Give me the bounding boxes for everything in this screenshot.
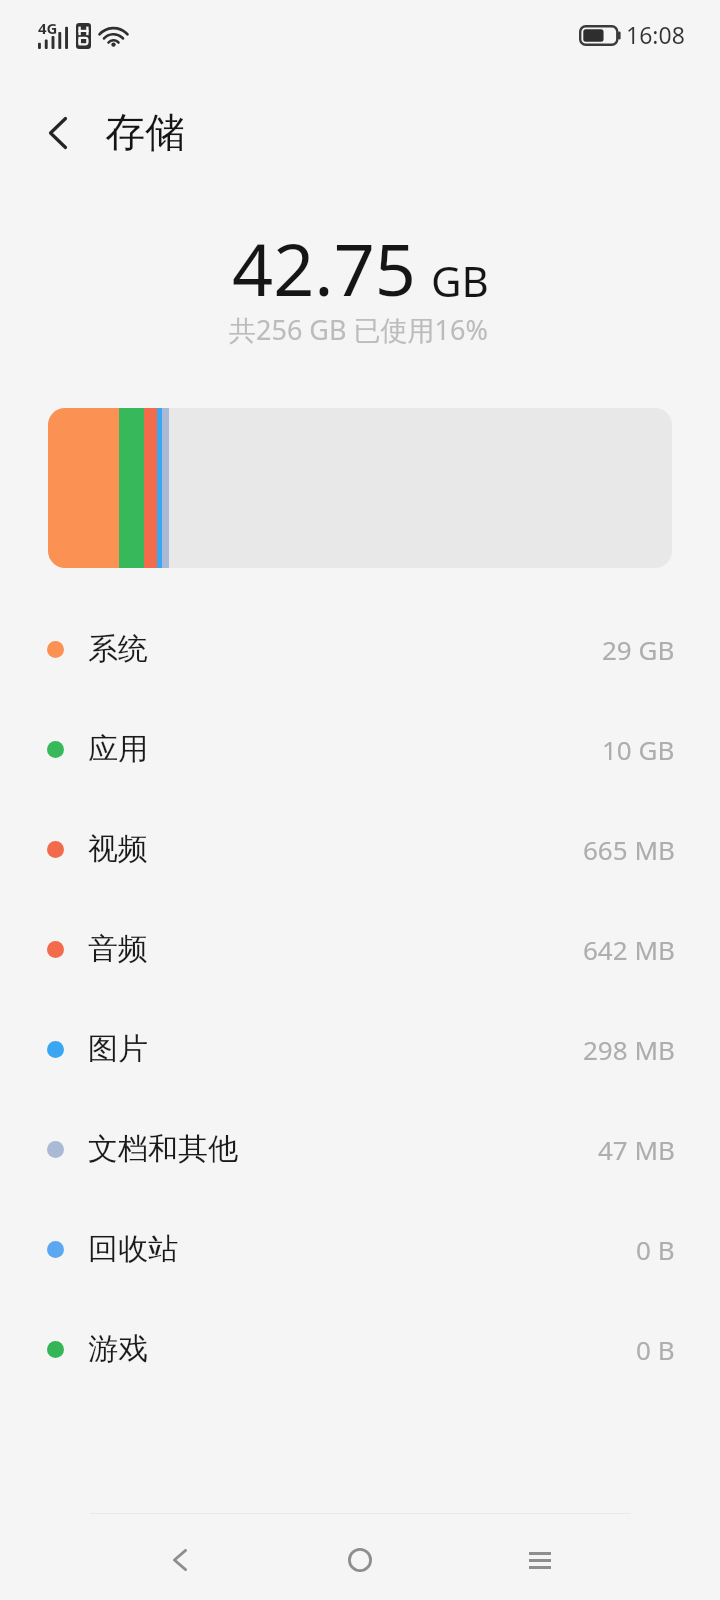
staticText: 音频 bbox=[88, 930, 148, 968]
staticText: 视频 bbox=[88, 830, 148, 868]
staticText: 42.75 bbox=[232, 219, 417, 317]
staticText: 0 B bbox=[636, 1332, 675, 1367]
staticText: 10 GB bbox=[602, 732, 675, 767]
staticText: 665 MB bbox=[583, 832, 675, 867]
staticText: 298 MB bbox=[583, 1032, 675, 1067]
staticText: GB bbox=[431, 252, 489, 309]
button[interactable]: Recent apps bbox=[500, 1520, 580, 1600]
staticText: 游戏 bbox=[88, 1330, 148, 1368]
staticText: 29 GB bbox=[602, 632, 675, 667]
staticText: 存储 bbox=[105, 107, 185, 157]
staticText: 应用 bbox=[88, 730, 148, 768]
button[interactable]: 音频 bbox=[0, 899, 720, 999]
staticText: 系统 bbox=[88, 630, 148, 668]
button[interactable]: Back bbox=[22, 97, 94, 169]
staticText: 文档和其他 bbox=[88, 1130, 238, 1168]
button[interactable]: Home bbox=[320, 1520, 400, 1600]
staticText: 0 B bbox=[636, 1232, 675, 1267]
button[interactable]: 回收站 bbox=[0, 1199, 720, 1299]
staticText: 图片 bbox=[88, 1030, 148, 1068]
staticText: 4G bbox=[38, 18, 58, 38]
button[interactable]: 视频 bbox=[0, 799, 720, 899]
button[interactable]: 文档和其他 bbox=[0, 1099, 720, 1199]
staticText: 16:08 bbox=[626, 19, 685, 50]
button[interactable]: 图片 bbox=[0, 999, 720, 1099]
button[interactable]: 游戏 bbox=[0, 1299, 720, 1399]
staticText: 47 MB bbox=[598, 1132, 675, 1167]
staticText: 共256 GB 已使用16% bbox=[229, 311, 488, 348]
button[interactable]: Back bbox=[140, 1520, 220, 1600]
button[interactable]: 应用 bbox=[0, 699, 720, 799]
staticText: 回收站 bbox=[88, 1230, 178, 1268]
staticText: 642 MB bbox=[583, 932, 675, 967]
button[interactable]: 系统 bbox=[0, 599, 720, 699]
